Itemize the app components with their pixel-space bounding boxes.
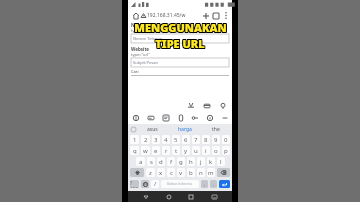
button[interactable]: . — [210, 180, 217, 188]
button[interactable]: Enter — [219, 180, 230, 188]
staticText: l — [220, 158, 222, 166]
button[interactable]: r — [162, 146, 170, 155]
button[interactable]: 6 — [182, 135, 190, 144]
staticText: z — [149, 169, 152, 177]
button[interactable]: Switch tabs — [211, 11, 221, 21]
staticText: / — [154, 180, 157, 188]
staticText: g — [179, 158, 183, 166]
button[interactable]: the — [211, 126, 221, 133]
staticText: s — [150, 158, 153, 166]
staticText: Website — [131, 46, 150, 52]
staticText: a — [139, 158, 143, 166]
button[interactable]: u — [192, 146, 200, 155]
button[interactable]: o — [212, 146, 220, 155]
button[interactable]: m — [207, 168, 215, 177]
button[interactable]: Location — [218, 101, 227, 110]
button[interactable]: f — [167, 157, 175, 166]
button[interactable]: Space — [161, 180, 199, 188]
button[interactable]: ?123 — [130, 180, 139, 188]
button[interactable]: 4 — [162, 135, 170, 144]
button[interactable]: Wallet — [202, 101, 211, 110]
staticText: 8 — [204, 136, 208, 144]
button[interactable]: Google — [130, 126, 136, 132]
button[interactable]: 3 — [152, 135, 160, 144]
button[interactable]: Collapse — [220, 113, 229, 122]
button[interactable]: Info — [205, 113, 214, 122]
button[interactable]: w — [141, 146, 150, 155]
button[interactable]: More options — [221, 11, 230, 20]
button[interactable]: v — [177, 168, 185, 177]
button[interactable]: d — [157, 157, 165, 166]
button[interactable]: Home — [130, 10, 141, 21]
button[interactable]: , — [201, 180, 208, 188]
button[interactable]: 0 — [222, 135, 230, 144]
button[interactable]: g — [177, 157, 185, 166]
button[interactable]: Key — [190, 113, 199, 122]
button[interactable]: Globe — [131, 113, 140, 122]
button[interactable]: h — [187, 157, 195, 166]
button[interactable]: x — [157, 168, 165, 177]
button[interactable]: 8 — [202, 135, 210, 144]
button[interactable]: Emoji — [141, 180, 149, 188]
staticText: 192.168.31.45/w — [147, 12, 201, 19]
staticText: MENGGUNAKAN — [133, 19, 226, 34]
staticText: 7 — [194, 136, 198, 144]
staticText: h — [189, 158, 193, 166]
staticText: . — [213, 181, 215, 187]
button[interactable]: a — [136, 157, 145, 166]
button[interactable]: s — [147, 157, 155, 166]
staticText: n — [199, 169, 203, 177]
button[interactable]: Backspace — [217, 168, 230, 177]
button[interactable]: i — [202, 146, 210, 155]
button[interactable]: 5 — [172, 135, 180, 144]
staticText: 6 — [184, 136, 188, 144]
staticText: , — [204, 181, 206, 187]
staticText: 2 — [144, 136, 148, 144]
button[interactable]: z — [146, 168, 155, 177]
staticText: MENGGUNAKAN — [134, 19, 227, 34]
button[interactable]: Switch keyboard — [209, 192, 219, 202]
staticText: MENGGUNAKAN — [133, 20, 226, 35]
button[interactable]: harga — [177, 126, 193, 133]
button[interactable]: p — [222, 146, 230, 155]
staticText: o — [214, 147, 218, 155]
button[interactable]: e — [152, 146, 160, 155]
button[interactable]: 2 — [141, 135, 150, 144]
button[interactable]: 9 — [212, 135, 220, 144]
button[interactable]: q — [130, 146, 139, 155]
staticText: TIPE URL — [156, 35, 206, 50]
staticText: MENGGUNAKAN — [133, 21, 226, 36]
button[interactable]: t — [172, 146, 180, 155]
button[interactable]: j — [197, 157, 205, 166]
staticText: r — [165, 147, 168, 155]
button[interactable]: Card — [146, 113, 155, 122]
button[interactable]: New tab — [201, 11, 211, 21]
button[interactable]: Formatting — [186, 101, 195, 110]
staticText: Bahasa Indonesia — [167, 182, 193, 186]
button[interactable]: y — [182, 146, 190, 155]
staticText: asus — [147, 126, 158, 133]
button[interactable]: 7 — [192, 135, 200, 144]
button[interactable]: c — [167, 168, 175, 177]
button[interactable]: 1 — [130, 135, 139, 144]
button[interactable]: asus — [146, 126, 159, 133]
button[interactable]: Back — [141, 192, 151, 202]
button[interactable]: Subjek Pesan — [131, 58, 229, 67]
button[interactable]: b — [187, 168, 195, 177]
button[interactable]: Recents — [186, 192, 196, 202]
button[interactable]: / — [151, 180, 159, 188]
staticText: d — [159, 158, 163, 166]
staticText: ?123 — [130, 180, 139, 188]
button[interactable]: k — [207, 157, 215, 166]
button[interactable]: l — [217, 157, 225, 166]
button[interactable]: n — [197, 168, 205, 177]
staticText: 4 — [164, 136, 168, 144]
button[interactable]: Nomor Telepon — [131, 34, 229, 43]
button[interactable]: Home — [164, 192, 174, 202]
button[interactable]: Device — [176, 113, 185, 122]
staticText: i — [205, 147, 207, 155]
staticText: the — [212, 126, 220, 133]
button[interactable]: Note — [161, 113, 170, 122]
staticText: MENGGUNAKAN — [134, 21, 227, 36]
button[interactable]: Shift — [130, 168, 144, 177]
